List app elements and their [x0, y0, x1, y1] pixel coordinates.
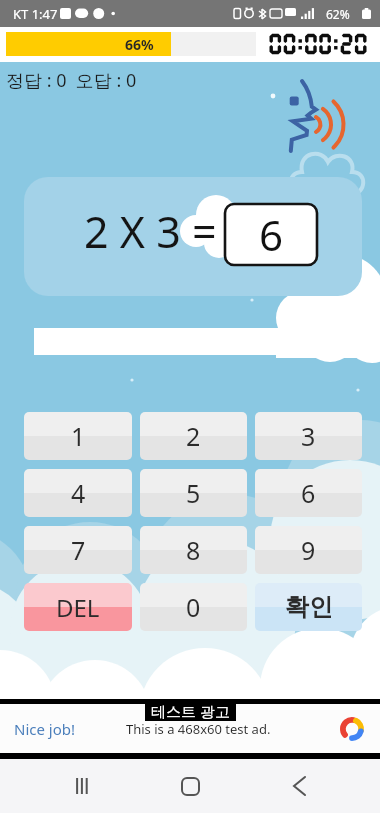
staticText: 1: [71, 419, 86, 453]
staticText: DEL: [56, 591, 100, 624]
button[interactable]: 0: [140, 583, 247, 631]
staticText: 3: [301, 419, 316, 453]
button[interactable]: Nice job!: [0, 704, 380, 753]
button[interactable]: Speak question: [285, 78, 347, 152]
button[interactable]: 3: [255, 412, 362, 460]
staticText: 2 X 3 =: [84, 202, 217, 261]
button[interactable]: 7: [24, 526, 132, 574]
button[interactable]: 2: [140, 412, 247, 460]
staticText: 7: [71, 533, 86, 567]
button[interactable]: 66%: [6, 32, 256, 56]
staticText: 정답 : 0 오답 : 0: [6, 68, 137, 93]
staticText: 4: [71, 476, 86, 510]
button[interactable]: 5: [140, 469, 247, 517]
button[interactable]: 1: [24, 412, 132, 460]
staticText: 확인: [285, 592, 333, 622]
staticText: 66%: [125, 35, 154, 54]
button[interactable]: 4: [24, 469, 132, 517]
staticText: 62%: [326, 6, 350, 22]
button[interactable]: DEL: [24, 583, 132, 631]
staticText: 5: [186, 476, 201, 510]
staticText: This is a 468x60 test ad.: [126, 720, 271, 738]
staticText: 8: [186, 533, 201, 567]
button[interactable]: 6: [255, 469, 362, 517]
staticText: KT 1:47: [13, 5, 58, 23]
button[interactable]: 9: [255, 526, 362, 574]
staticText: Nice job!: [14, 719, 76, 739]
button[interactable]: 8: [140, 526, 247, 574]
staticText: 테스트 광고: [151, 701, 230, 721]
staticText: 2: [186, 419, 201, 453]
staticText: 9: [301, 533, 316, 567]
button[interactable]: 확인: [255, 583, 362, 631]
button[interactable]: Home: [162, 764, 218, 808]
staticText: 6: [259, 206, 284, 263]
staticText: 0: [186, 590, 201, 624]
button[interactable]: Recents: [53, 764, 109, 808]
button[interactable]: Back: [271, 764, 327, 808]
staticText: 6: [301, 476, 316, 510]
